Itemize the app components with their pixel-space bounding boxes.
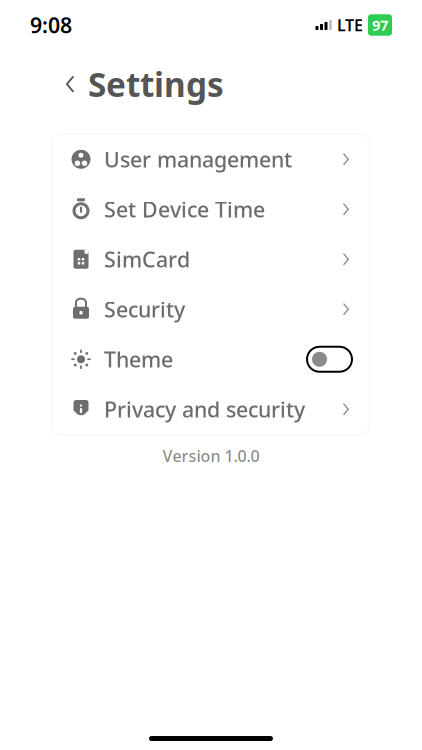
staticText: SimCard (104, 245, 190, 273)
staticText: User management (104, 145, 292, 173)
staticText: LTE (337, 14, 363, 36)
button[interactable]: Back to Settings (62, 56, 224, 112)
button[interactable]: Set Device Time (52, 184, 370, 234)
staticText: Theme (104, 345, 173, 373)
button[interactable]: SimCard (52, 234, 370, 284)
staticText: Security (104, 295, 185, 323)
staticText: Settings (88, 62, 224, 106)
staticText: Version 1.0.0 (162, 445, 259, 466)
staticText: 97 (372, 15, 388, 35)
staticText: Set Device Time (104, 195, 265, 223)
staticText: Privacy and security (104, 395, 305, 423)
staticText: 9:08 (30, 11, 72, 39)
button[interactable]: Privacy and security (52, 384, 370, 434)
button[interactable]: Security (52, 284, 370, 334)
button[interactable]: Theme (52, 334, 370, 384)
button[interactable]: User management (52, 134, 370, 184)
